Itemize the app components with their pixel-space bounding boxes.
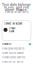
staticText: Read our privacy policy xyxy=(4,11,28,13)
staticText: alone. Always. xyxy=(5,8,28,12)
staticText: to you, and you xyxy=(4,5,29,9)
staticText: Your data belongs xyxy=(2,3,31,6)
staticText: Chase Bank xyxy=(9,27,15,33)
staticText: Connect an account xyxy=(3,22,22,25)
staticText: Never sold or shared xyxy=(2,52,23,54)
staticText: Bank-grade encryption xyxy=(2,47,24,50)
staticText: Security xyxy=(2,43,11,46)
staticText: Revoke access anytime xyxy=(2,56,25,59)
staticText: Read the full policy xyxy=(2,60,23,63)
